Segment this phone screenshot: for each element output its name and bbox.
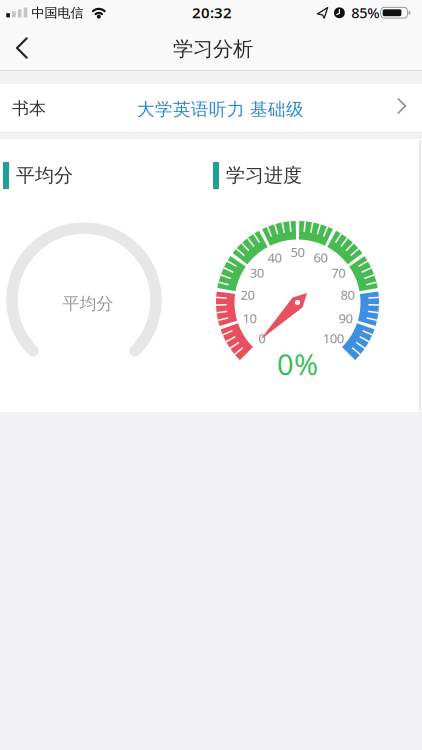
button[interactable]: 书本 [0, 84, 422, 133]
staticText: 学习分析 [173, 36, 253, 62]
staticText: 20:32 [192, 2, 232, 23]
staticText: 平均分 [16, 163, 73, 187]
staticText: 平均分 [62, 293, 113, 314]
staticText: 0% [277, 344, 318, 384]
staticText: 书本 [12, 98, 46, 119]
staticText: 80 [340, 286, 354, 303]
staticText: 85% [351, 3, 379, 22]
staticText: 大学英语听力 基础级 [137, 98, 304, 120]
staticText: 20 [241, 286, 255, 303]
staticText: 50 [290, 243, 304, 261]
button[interactable]: 返回 [0, 26, 44, 70]
staticText: 0 [258, 329, 265, 347]
staticText: 学习进度 [226, 163, 302, 187]
staticText: 40 [268, 249, 282, 266]
staticText: 30 [250, 264, 264, 282]
staticText: 中国电信 [31, 5, 83, 21]
staticText: 10 [242, 309, 256, 327]
staticText: 60 [313, 249, 327, 266]
staticText: 90 [338, 309, 352, 327]
staticText: 70 [331, 264, 345, 282]
staticText: 100 [323, 329, 344, 347]
